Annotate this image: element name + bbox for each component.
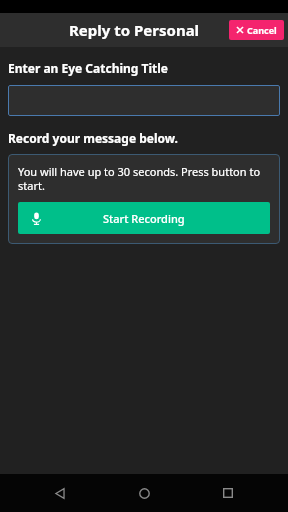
staticText: You will have up to 30 seconds. Press bu… (18, 164, 270, 193)
staticText: Record your message below. (8, 130, 178, 146)
button[interactable] (8, 85, 280, 116)
staticText: Reply to Personal (69, 20, 200, 40)
button[interactable]: Back (36, 474, 84, 512)
staticText: Start Recording (103, 211, 185, 226)
button[interactable]: Recent apps (204, 474, 252, 512)
button[interactable]: Home (120, 474, 168, 512)
button[interactable]: Start Recording (18, 202, 270, 234)
staticText: Enter an Eye Catching Title (8, 60, 168, 76)
button[interactable]: Cancel (229, 20, 284, 40)
staticText: Cancel (247, 24, 277, 36)
